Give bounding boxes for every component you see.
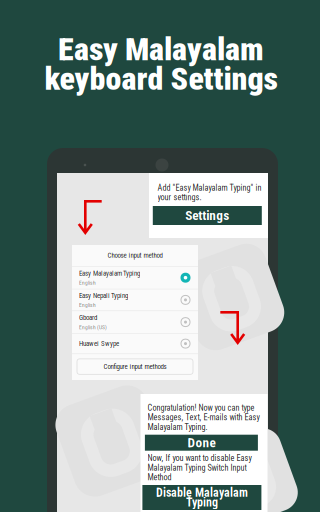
staticText: Messages, Text, E-mails with Easy	[147, 413, 259, 422]
staticText: Add "Easy Malayalam Typing" in	[158, 183, 262, 193]
button[interactable]: Done	[145, 435, 258, 451]
button[interactable]: Huawei Swype	[72, 334, 198, 353]
staticText: Choose input method	[107, 251, 162, 259]
staticText: Done	[187, 435, 215, 450]
staticText: Now, If you want to disable Easy	[147, 453, 251, 463]
staticText: English	[79, 302, 96, 308]
staticText: Congratulation! Now you can type	[147, 403, 254, 413]
staticText: English	[79, 280, 96, 286]
button[interactable]: Configure input methods	[77, 359, 193, 374]
button[interactable]: Easy Malayalam Typing	[72, 267, 198, 289]
staticText: keyboard Settings	[44, 60, 277, 97]
staticText: Easy Nepali Typing	[79, 291, 128, 300]
staticText: Gboard	[79, 314, 97, 322]
staticText: Typing	[186, 495, 218, 509]
staticText: Malayalam Typing.	[147, 422, 207, 432]
staticText: Configure input methods	[103, 362, 166, 371]
staticText: Method	[147, 473, 171, 482]
button[interactable]: Easy Nepali Typing	[72, 289, 198, 310]
button[interactable]: Disable Malayalam	[142, 485, 261, 510]
staticText: English (US)	[79, 324, 107, 331]
staticText: Huawei Swype	[79, 339, 119, 348]
button[interactable]: Settings	[153, 206, 262, 225]
staticText: Easy Malayalam	[58, 30, 264, 68]
button[interactable]: Gboard	[72, 311, 198, 333]
staticText: Disable Malayalam	[156, 486, 248, 500]
staticText: Settings	[185, 208, 229, 223]
staticText: Easy Malayalam Typing	[79, 269, 140, 277]
staticText: Malayalam Typing Switch Input	[147, 463, 246, 473]
staticText: your settings.	[158, 193, 202, 202]
